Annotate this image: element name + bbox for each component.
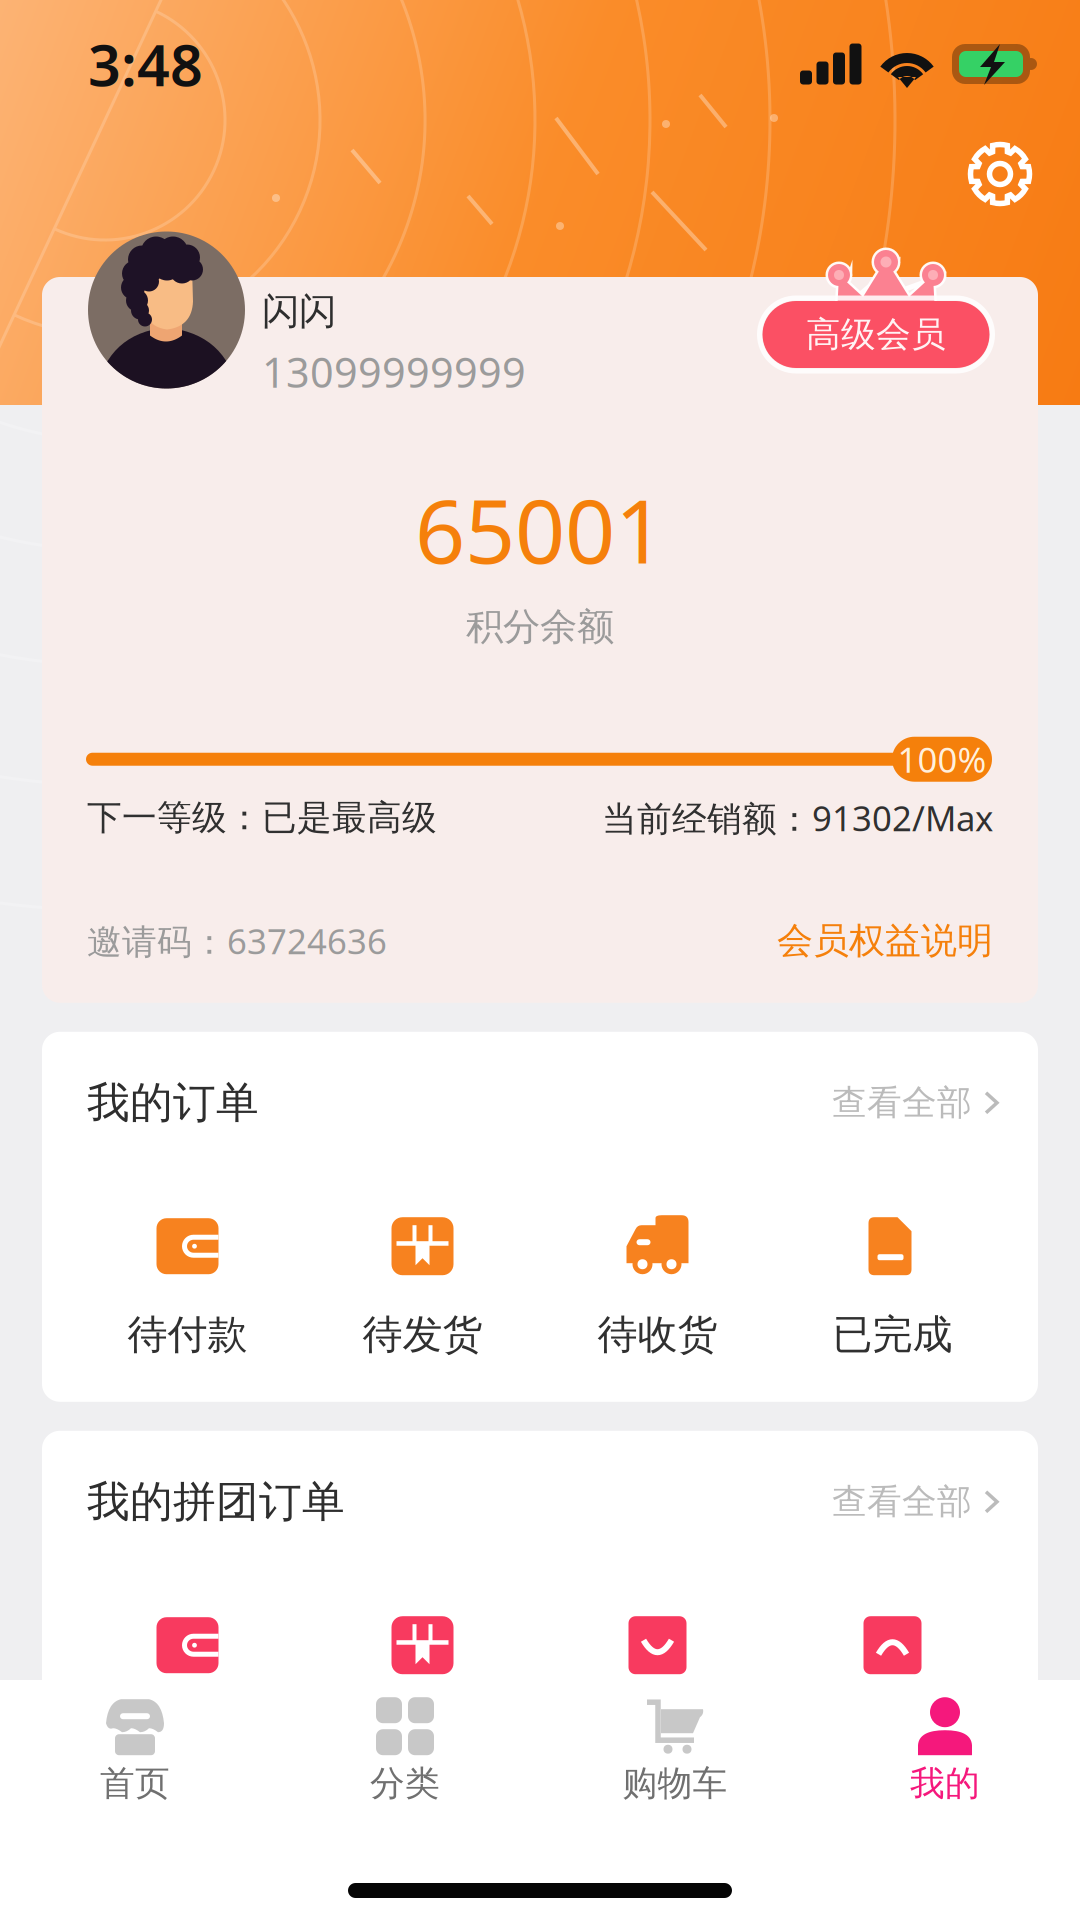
staticText: 100% xyxy=(897,736,986,782)
button[interactable]: 查看全部 xyxy=(832,1476,1000,1528)
button[interactable]: 首页 xyxy=(0,1680,270,1816)
button[interactable]: 待发货 xyxy=(305,1617,540,1758)
staticText: 查看全部 xyxy=(832,1081,972,1124)
button[interactable]: 高级会员 xyxy=(753,227,999,343)
staticText: 我的订单 xyxy=(87,1077,259,1129)
staticText: 积分余额 xyxy=(466,604,614,650)
staticText: 13099999999 xyxy=(262,344,526,399)
staticText: 分类 xyxy=(370,1762,440,1805)
staticText: 邀请码：63724636 xyxy=(87,918,387,964)
staticText: 购物车 xyxy=(622,1762,727,1805)
staticText: 待付款 xyxy=(127,1310,247,1359)
staticText: 65001 xyxy=(415,471,665,588)
staticText: 查看全部 xyxy=(832,1480,972,1523)
button[interactable]: Settings xyxy=(966,140,1034,208)
staticText: 我的 xyxy=(910,1762,980,1805)
staticText: 下一等级：已是最高级 xyxy=(87,796,437,839)
staticText: 待发货 xyxy=(362,1310,482,1359)
staticText: 已完成 xyxy=(832,1310,952,1359)
staticText: 已完成 xyxy=(832,1709,952,1758)
staticText: 会员权益说明 xyxy=(777,919,993,963)
button[interactable]: 已完成 xyxy=(775,1218,1010,1359)
staticText: 待付款 xyxy=(127,1709,247,1758)
button[interactable]: 我的 xyxy=(810,1680,1080,1816)
button[interactable]: 待付款 xyxy=(70,1218,305,1359)
staticText: 3:48 xyxy=(88,26,203,102)
staticText: 高级会员 xyxy=(806,313,946,356)
button[interactable]: 待收货 xyxy=(540,1617,775,1758)
staticText: 我的拼团订单 xyxy=(87,1476,345,1528)
button[interactable]: 待付款 xyxy=(70,1617,305,1758)
button[interactable]: 分类 xyxy=(270,1680,540,1816)
staticText: 待发货 xyxy=(362,1709,482,1758)
button[interactable]: 已完成 xyxy=(775,1617,1010,1758)
staticText: 待收货 xyxy=(597,1709,717,1758)
button[interactable]: 待收货 xyxy=(540,1218,775,1359)
button[interactable]: 购物车 xyxy=(540,1680,810,1816)
staticText: 待收货 xyxy=(597,1310,717,1359)
staticText: 闪闪 xyxy=(262,288,336,334)
button[interactable]: 待发货 xyxy=(305,1218,540,1359)
button[interactable]: 会员权益说明 xyxy=(777,919,993,963)
staticText: 当前经销额：91302/Max xyxy=(602,795,993,841)
staticText: 首页 xyxy=(100,1762,170,1805)
button[interactable]: 查看全部 xyxy=(832,1077,1000,1129)
